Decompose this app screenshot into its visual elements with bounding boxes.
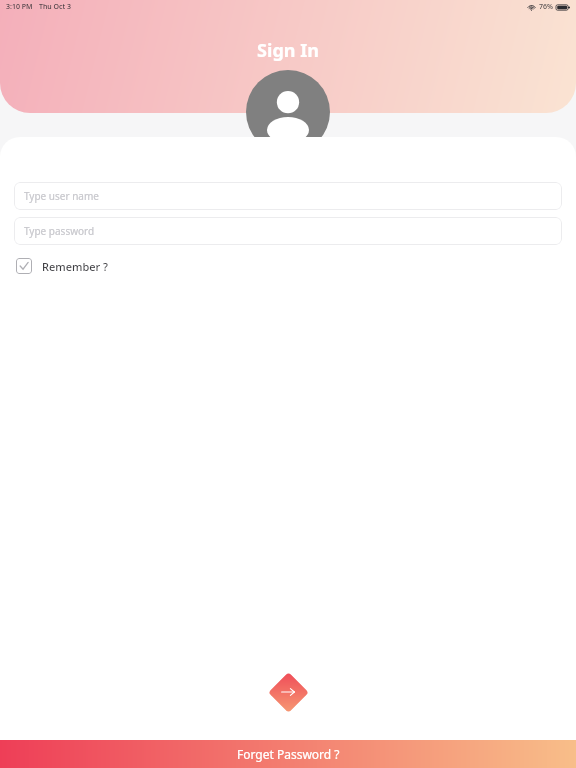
staticText: Sign In	[0, 38, 576, 63]
other: Profile picture	[246, 70, 330, 154]
staticText: Type password	[24, 224, 95, 238]
staticText: Thu Oct 3	[39, 2, 71, 12]
button[interactable]: Type user name	[14, 182, 562, 210]
button[interactable]: Forget Password ?	[0, 740, 576, 768]
button[interactable]: Sign in	[260, 664, 316, 720]
staticText: Remember ?	[42, 259, 108, 274]
staticText: 3:10 PM	[6, 2, 33, 12]
staticText: Forget Password ?	[237, 746, 340, 762]
button[interactable]: Type password	[14, 217, 562, 245]
button[interactable]: Remember ?	[14, 255, 110, 277]
staticText: Type user name	[24, 189, 99, 203]
staticText: 76%	[539, 2, 553, 12]
